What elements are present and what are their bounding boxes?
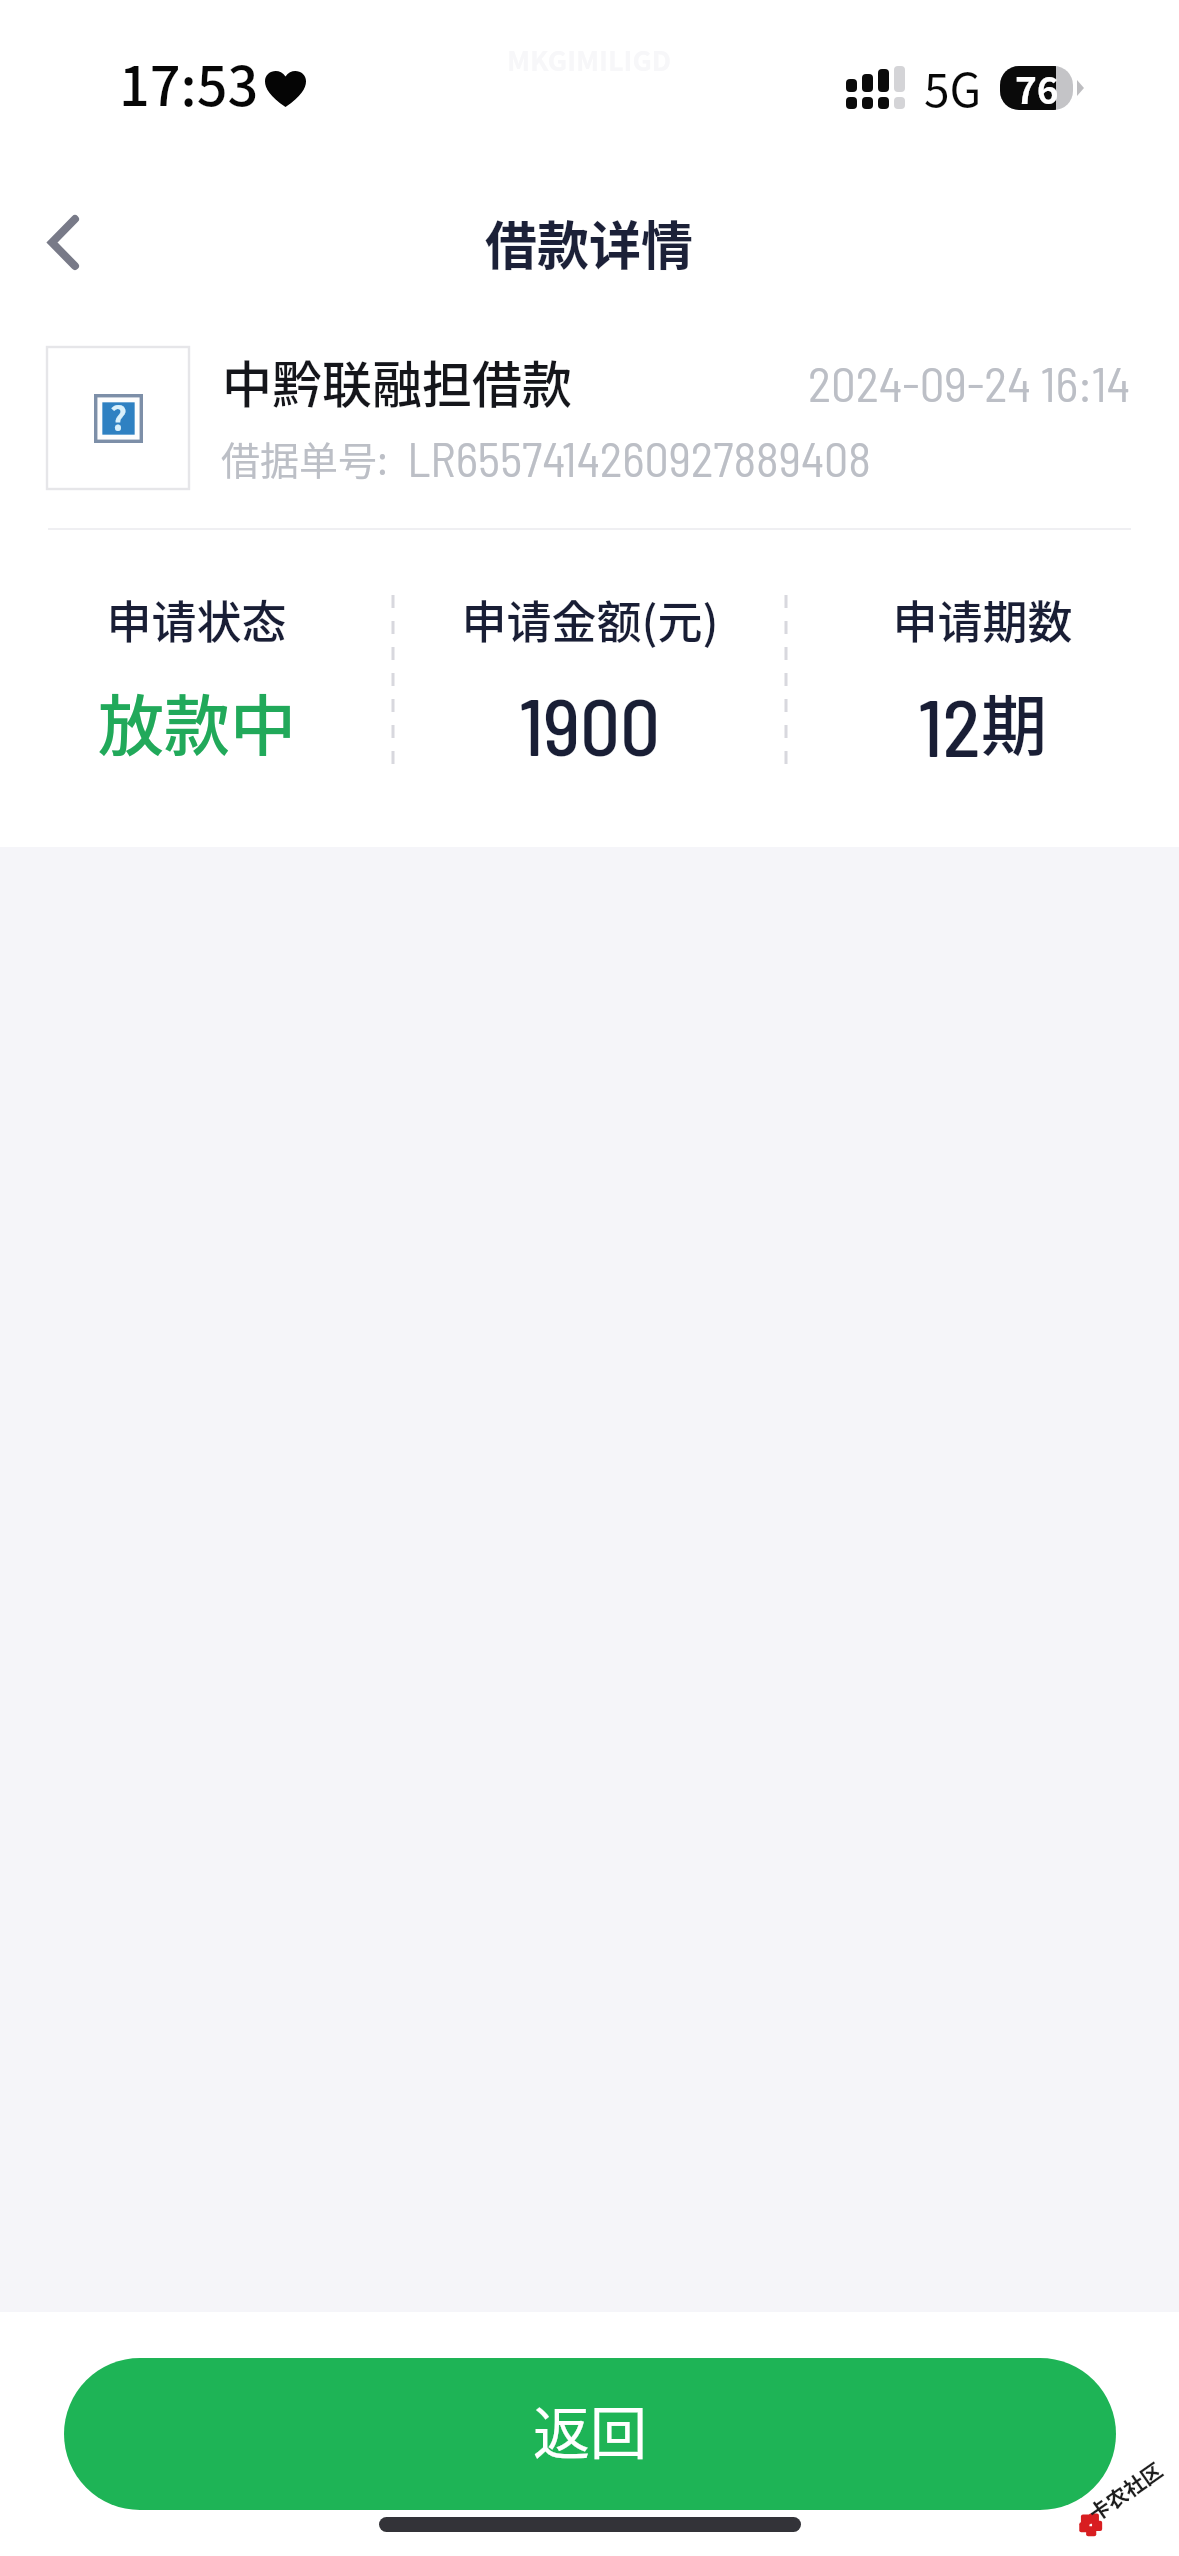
staticText: 期 — [981, 673, 1047, 769]
staticText: 申请期数 — [892, 587, 1073, 652]
staticText: ? — [110, 393, 127, 441]
staticText: 返回 — [533, 2388, 647, 2471]
staticText: 放款中 — [98, 673, 296, 769]
button[interactable]: Back — [18, 197, 108, 287]
staticText: 5G — [924, 54, 982, 121]
staticText: MKGIMILIGD — [507, 40, 672, 79]
staticText: 17:53 — [119, 43, 259, 121]
staticText: 1900 — [519, 677, 661, 772]
button[interactable]: 返回 — [64, 2358, 1116, 2510]
staticText: 借据单号: — [221, 430, 388, 486]
staticText: 申请状态 — [106, 587, 287, 652]
staticText: 76 — [1015, 66, 1059, 105]
staticText: 卡农社区 — [1082, 2455, 1168, 2527]
staticText: 申请金额(元) — [461, 587, 719, 652]
staticText: 12 — [918, 678, 981, 773]
staticText: 中黔联融担借款 — [222, 345, 572, 417]
staticText: 借款详情 — [485, 205, 694, 280]
staticText: LR6557414260927889408 — [388, 429, 871, 487]
staticText: 2024-09-24 16:14 — [808, 353, 1131, 412]
